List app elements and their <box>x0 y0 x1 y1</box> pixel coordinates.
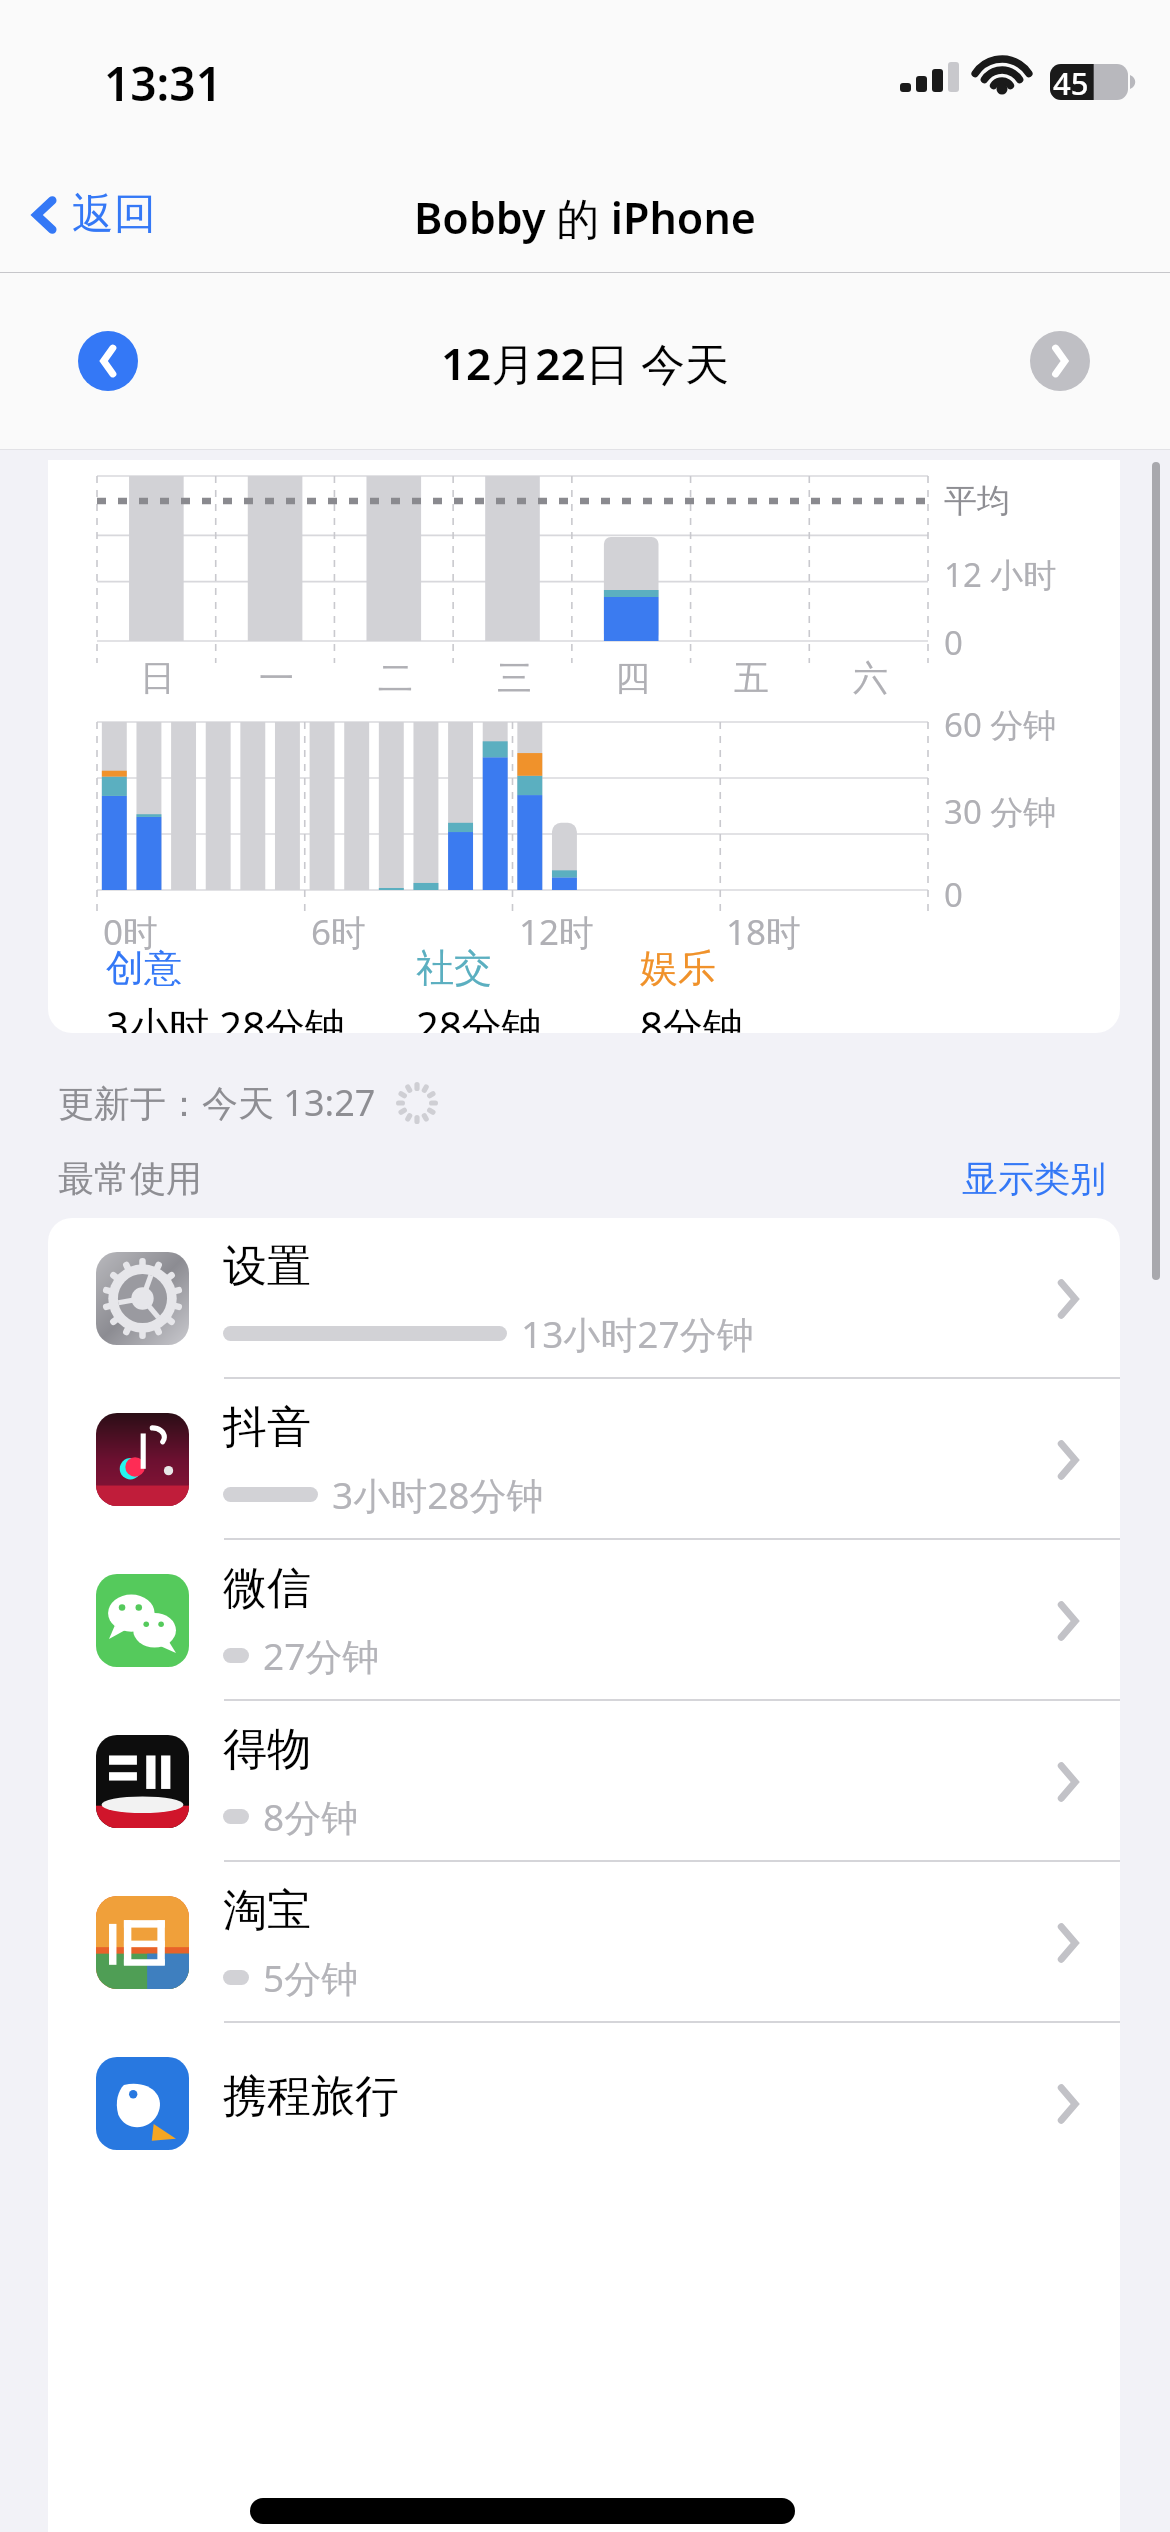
staticText: 一 <box>259 656 294 700</box>
staticText: 0 <box>944 872 963 917</box>
staticText: 3小时 28分钟 <box>106 998 346 1033</box>
staticText: 五 <box>734 656 769 700</box>
staticText: 携程旅行 <box>223 2069 399 2124</box>
staticText: 5分钟 <box>263 1952 359 2003</box>
staticText: Bobby 的 iPhone <box>0 188 1170 247</box>
staticText: 8分钟 <box>263 1791 359 1842</box>
staticText: 12 小时 <box>944 552 1057 597</box>
staticText: 设置 <box>223 1239 311 1294</box>
staticText: 日 <box>140 656 175 700</box>
staticText: 四 <box>615 656 650 700</box>
button[interactable]: 下一天 <box>1030 331 1090 391</box>
staticText: 12时 <box>519 908 595 956</box>
staticText: 微信 <box>223 1561 311 1616</box>
staticText: 13小时27分钟 <box>521 1308 754 1359</box>
button[interactable]: 得物 <box>48 1701 1120 1862</box>
staticText: 最常使用 <box>58 1156 202 1201</box>
staticText: 显示类别 <box>962 1156 1106 1201</box>
staticText: 30 分钟 <box>944 789 1057 834</box>
staticText: 社交 <box>416 944 492 992</box>
staticText: 淘宝 <box>223 1883 311 1938</box>
staticText: 45 <box>1053 62 1089 104</box>
staticText: 0 <box>944 620 963 665</box>
staticText: 六 <box>853 656 888 700</box>
staticText: 娱乐 <box>640 944 716 992</box>
button[interactable]: 携程旅行 <box>48 2023 1120 2184</box>
button[interactable]: 显示类别 <box>956 1150 1112 1207</box>
staticText: 18时 <box>726 908 802 956</box>
button[interactable]: 上一天 <box>78 331 138 391</box>
staticText: 抖音 <box>223 1400 311 1455</box>
staticText: 8分钟 <box>640 998 743 1033</box>
button[interactable]: 返回 <box>24 178 164 251</box>
staticText: 6时 <box>311 908 367 956</box>
button[interactable]: 设置 <box>48 1218 1120 1379</box>
staticText: 更新于：今天 13:27 <box>58 1078 376 1127</box>
staticText: 创意 <box>106 944 182 992</box>
staticText: 返回 <box>72 188 156 241</box>
staticText: 三 <box>497 656 532 700</box>
button[interactable]: 淘宝 <box>48 1862 1120 2023</box>
staticText: 13:31 <box>104 52 222 115</box>
button[interactable]: 抖音 <box>48 1379 1120 1540</box>
staticText: 0时 <box>103 908 159 956</box>
staticText: 28分钟 <box>416 998 542 1033</box>
staticText: 12月22日 今天 <box>0 333 1170 393</box>
button[interactable]: 微信 <box>48 1540 1120 1701</box>
staticText: 27分钟 <box>263 1630 380 1681</box>
staticText: 平均 <box>944 480 1010 522</box>
staticText: 60 分钟 <box>944 702 1057 747</box>
staticText: 二 <box>378 656 413 700</box>
staticText: 得物 <box>223 1722 311 1777</box>
staticText: 3小时28分钟 <box>332 1469 544 1520</box>
